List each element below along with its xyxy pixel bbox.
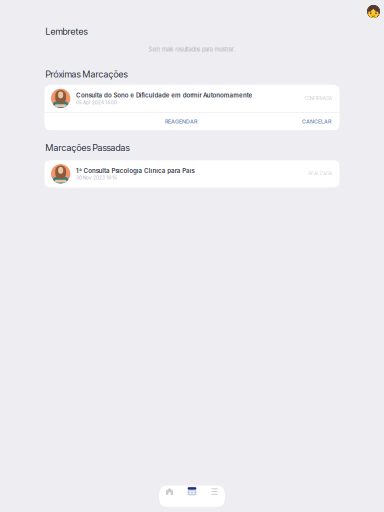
staticText: 05 Apr 2024 14:00 xyxy=(76,100,117,105)
button[interactable]: Menu xyxy=(207,485,221,507)
staticText: 👧 xyxy=(365,4,382,19)
button[interactable]: CANCELAR xyxy=(293,113,339,130)
staticText: Sem mais resultados para mostrar. xyxy=(148,46,236,53)
staticText: Marcações Passadas xyxy=(45,142,129,153)
staticText: REALIZADA xyxy=(308,171,332,177)
button[interactable]: Profile xyxy=(367,5,380,18)
staticText: 30 Nov 2023 19:15 xyxy=(76,175,117,181)
staticText: CANCELAR xyxy=(302,118,331,125)
staticText: Lembretes xyxy=(45,26,87,37)
button[interactable]: REAGENDAR xyxy=(156,113,205,130)
button[interactable]: Appointments xyxy=(185,485,199,507)
staticText: CONFIRMADA xyxy=(304,96,332,101)
staticText: REAGENDAR xyxy=(165,118,197,125)
staticText: Próximas Marcações xyxy=(45,69,127,80)
staticText: Consulta do Sono e Dificuldade em dormir… xyxy=(76,91,252,99)
button[interactable]: 1ª Consulta Psicologia Clínica para Pais xyxy=(44,160,339,187)
staticText: 1ª Consulta Psicologia Clínica para Pais xyxy=(76,167,194,174)
button[interactable]: Home xyxy=(162,485,176,507)
